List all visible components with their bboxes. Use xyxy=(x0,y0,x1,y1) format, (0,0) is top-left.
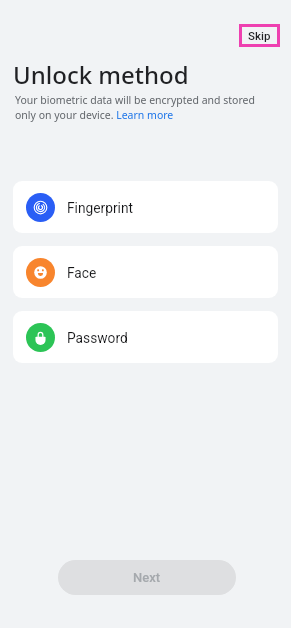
button[interactable]: Password xyxy=(13,311,278,363)
staticText: Face xyxy=(67,265,97,281)
staticText: Your biometric data will be encrypted an… xyxy=(15,93,260,122)
staticText: Password xyxy=(67,330,128,346)
staticText: Fingerprint xyxy=(67,200,134,216)
staticText: Skip xyxy=(248,29,271,42)
staticText: Unlock method xyxy=(13,58,189,91)
button[interactable]: Next xyxy=(58,560,236,595)
button[interactable]: Face xyxy=(13,246,278,298)
staticText: Next xyxy=(133,570,161,585)
button[interactable]: Fingerprint xyxy=(13,181,278,233)
button[interactable]: Skip xyxy=(239,24,280,47)
